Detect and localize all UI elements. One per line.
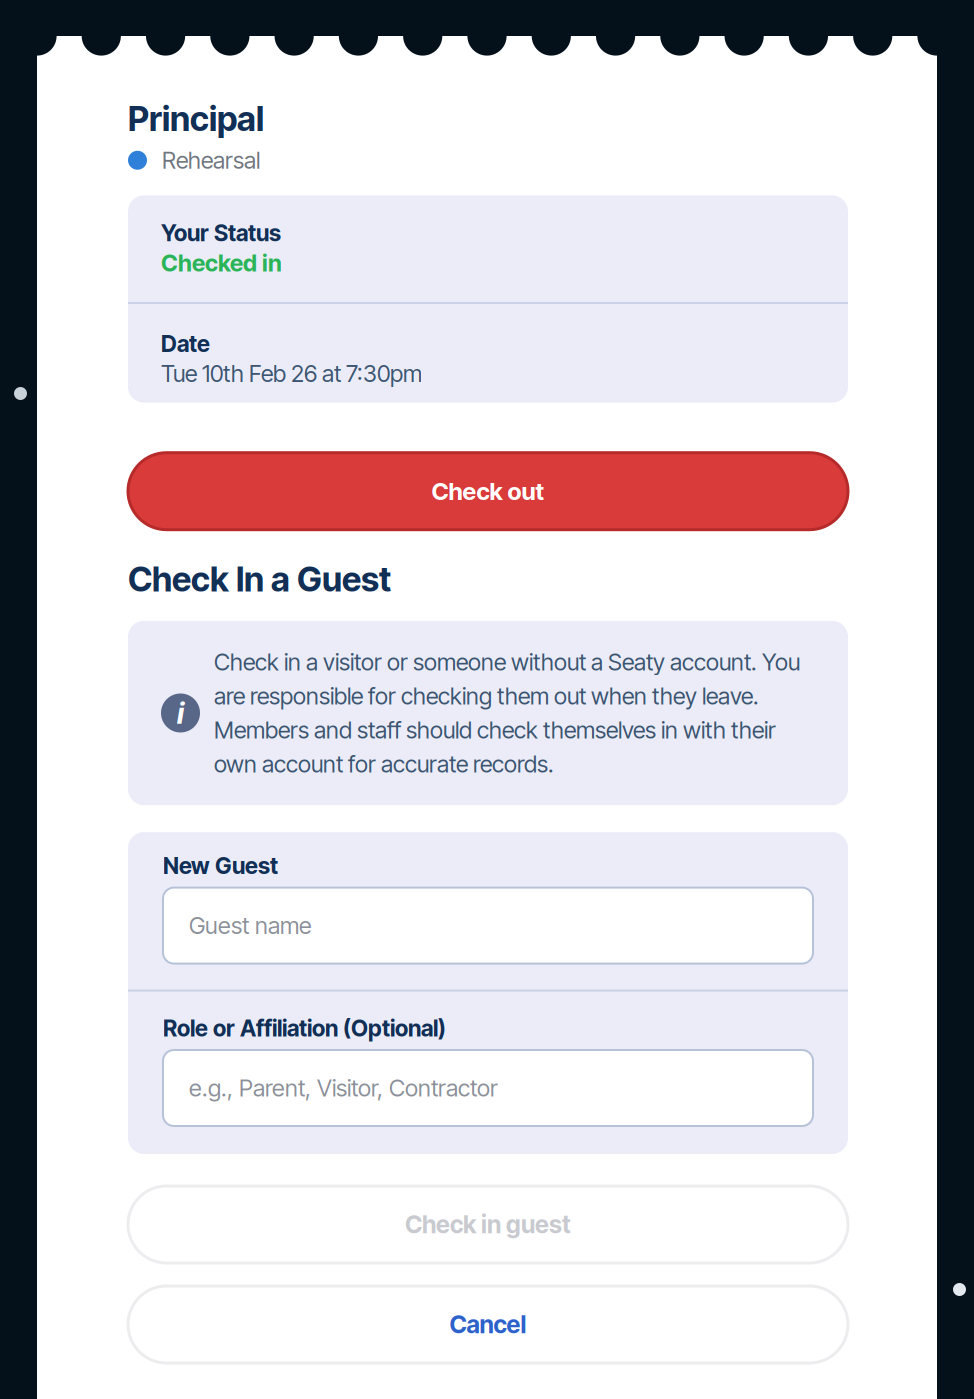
staticText: i — [177, 695, 184, 731]
staticText: Checked in — [161, 249, 282, 277]
staticText: Principal — [128, 98, 264, 139]
staticText: Date — [161, 330, 210, 357]
staticText: New Guest — [163, 852, 278, 880]
button[interactable]: Check out — [128, 453, 848, 530]
staticText: Check out — [431, 477, 544, 506]
staticText: Role or Affiliation (Optional) — [163, 1015, 446, 1042]
button[interactable]: Check in guest — [128, 1186, 848, 1263]
staticText: Your Status — [161, 219, 281, 247]
staticText: Check in guest — [405, 1210, 571, 1239]
staticText: Tue 10th Feb 26 at 7:30pm — [161, 359, 422, 388]
staticText: Guest name — [189, 911, 312, 940]
staticText: Check in a visitor or someone without a … — [214, 648, 800, 778]
button[interactable]: Cancel — [128, 1286, 848, 1363]
staticText: Rehearsal — [162, 146, 260, 174]
staticText: e.g., Parent, Visitor, Contractor — [189, 1074, 498, 1102]
staticText: Check In a Guest — [128, 559, 391, 600]
staticText: Cancel — [449, 1310, 526, 1339]
